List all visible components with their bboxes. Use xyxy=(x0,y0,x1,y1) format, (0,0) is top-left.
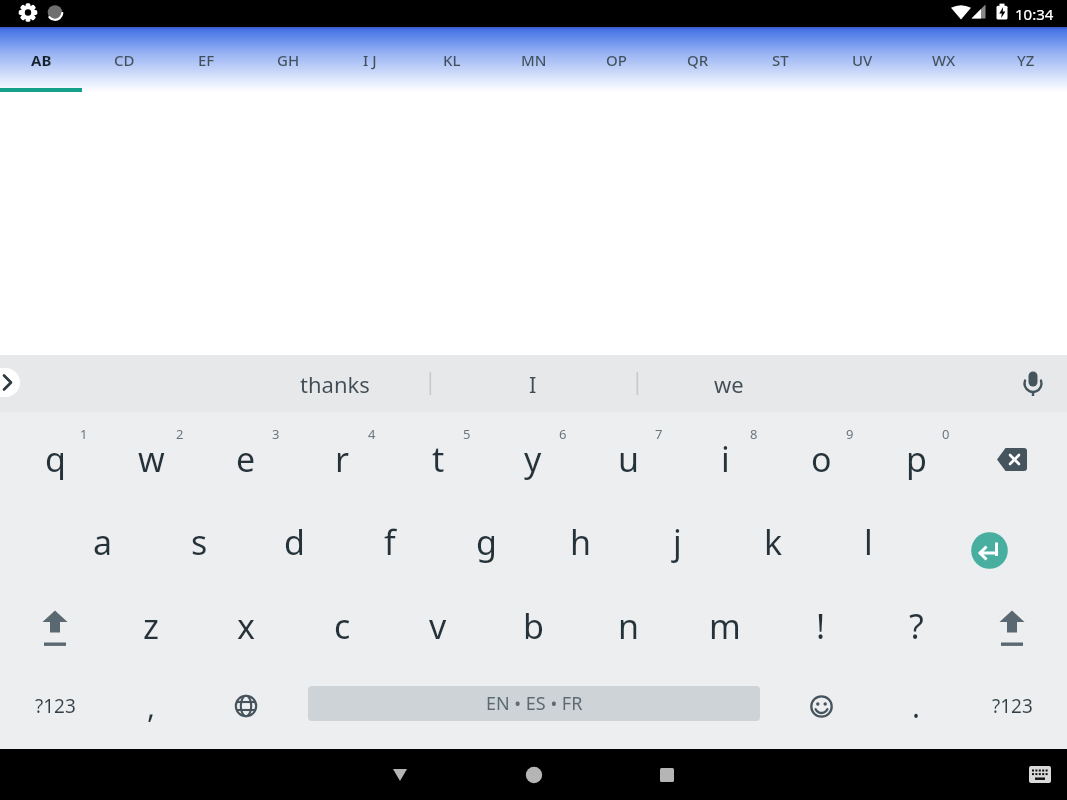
button[interactable]: z xyxy=(103,584,199,668)
staticText: t xyxy=(432,436,445,482)
button[interactable]: ?123 xyxy=(7,664,103,748)
button[interactable]: x xyxy=(198,584,294,668)
button[interactable]: e xyxy=(198,417,294,501)
button[interactable]: p xyxy=(868,417,964,501)
button[interactable]: UV xyxy=(821,27,903,92)
button[interactable]: GH xyxy=(247,27,329,92)
staticText: j xyxy=(673,519,682,565)
staticText: thanks xyxy=(300,369,370,399)
staticText: EF xyxy=(198,50,215,70)
button[interactable]: ! xyxy=(773,584,869,668)
button[interactable]: CD xyxy=(83,27,165,92)
button[interactable] xyxy=(942,508,1036,592)
button[interactable]: q xyxy=(7,417,103,501)
staticText: , xyxy=(147,686,156,727)
button[interactable] xyxy=(198,664,294,748)
button[interactable]: d xyxy=(246,500,342,584)
staticText: 2 xyxy=(176,425,184,443)
staticText: 1 xyxy=(80,425,88,443)
button[interactable]: OP xyxy=(575,27,657,92)
button[interactable]: ? xyxy=(868,584,964,668)
button[interactable]: ?123 xyxy=(964,664,1060,748)
button[interactable]: k xyxy=(725,500,821,584)
button[interactable]: , xyxy=(103,664,199,748)
staticText: OP xyxy=(606,50,627,70)
staticText: CD xyxy=(114,50,135,70)
button[interactable]: u xyxy=(581,417,677,501)
button[interactable] xyxy=(773,664,869,748)
staticText: a xyxy=(93,519,113,565)
button[interactable]: QR xyxy=(657,27,739,92)
staticText: d xyxy=(284,519,305,565)
staticText: 7 xyxy=(655,425,663,443)
button[interactable]: YZ xyxy=(985,27,1067,92)
staticText: h xyxy=(570,519,592,565)
staticText: QR xyxy=(687,50,709,70)
staticText: WX xyxy=(932,50,956,70)
button[interactable] xyxy=(7,584,103,668)
button[interactable] xyxy=(1011,361,1055,406)
staticText: . xyxy=(912,686,921,727)
staticText: 8 xyxy=(750,425,758,443)
button[interactable]: l xyxy=(820,500,916,584)
button[interactable] xyxy=(512,753,556,797)
button[interactable]: we xyxy=(634,355,824,412)
button[interactable]: v xyxy=(390,584,486,668)
button[interactable]: t xyxy=(390,417,486,501)
button[interactable] xyxy=(0,368,20,397)
staticText: 0 xyxy=(942,425,950,443)
staticText: i xyxy=(721,436,730,482)
button[interactable]: i xyxy=(677,417,773,501)
button[interactable]: c xyxy=(294,584,390,668)
button[interactable]: MN xyxy=(493,27,575,92)
button[interactable]: I xyxy=(438,355,628,412)
button[interactable]: h xyxy=(533,500,629,584)
button[interactable] xyxy=(645,753,689,797)
button[interactable]: s xyxy=(151,500,247,584)
staticText: 6 xyxy=(559,425,567,443)
staticText: w xyxy=(138,436,165,482)
staticText: q xyxy=(45,436,66,482)
staticText: ? xyxy=(909,603,924,649)
button[interactable]: ST xyxy=(739,27,821,92)
button[interactable] xyxy=(1018,753,1062,797)
button[interactable]: g xyxy=(438,500,534,584)
button[interactable]: WX xyxy=(903,27,985,92)
button[interactable]: EF xyxy=(165,27,247,92)
button[interactable]: a xyxy=(55,500,151,584)
staticText: ST xyxy=(772,50,789,70)
button[interactable]: j xyxy=(629,500,725,584)
staticText: z xyxy=(143,603,159,649)
staticText: y xyxy=(524,436,542,482)
staticText: YZ xyxy=(1017,50,1035,70)
staticText: o xyxy=(811,436,832,482)
button[interactable]: EN • ES • FR xyxy=(308,686,760,721)
button[interactable]: n xyxy=(581,584,677,668)
staticText: 9 xyxy=(846,425,854,443)
button[interactable]: I J xyxy=(329,27,411,92)
staticText: ! xyxy=(816,603,826,649)
button[interactable]: m xyxy=(677,584,773,668)
staticText: 5 xyxy=(463,425,471,443)
button[interactable]: w xyxy=(103,417,199,501)
button[interactable] xyxy=(378,753,422,797)
button[interactable]: thanks xyxy=(240,355,430,412)
staticText: KL xyxy=(443,50,461,70)
button[interactable]: AB xyxy=(0,27,83,92)
button[interactable]: . xyxy=(868,664,964,748)
staticText: n xyxy=(618,603,640,649)
staticText: s xyxy=(191,519,208,565)
staticText: I J xyxy=(363,50,377,70)
button[interactable]: KL xyxy=(411,27,493,92)
staticText: m xyxy=(709,603,741,649)
staticText: UV xyxy=(852,50,873,70)
button[interactable]: f xyxy=(342,500,438,584)
button[interactable]: r xyxy=(294,417,390,501)
button[interactable]: y xyxy=(485,417,581,501)
staticText: MN xyxy=(521,50,547,70)
button[interactable] xyxy=(964,584,1060,668)
staticText: c xyxy=(334,603,351,649)
button[interactable] xyxy=(964,417,1060,501)
button[interactable]: o xyxy=(773,417,869,501)
button[interactable]: b xyxy=(485,584,581,668)
